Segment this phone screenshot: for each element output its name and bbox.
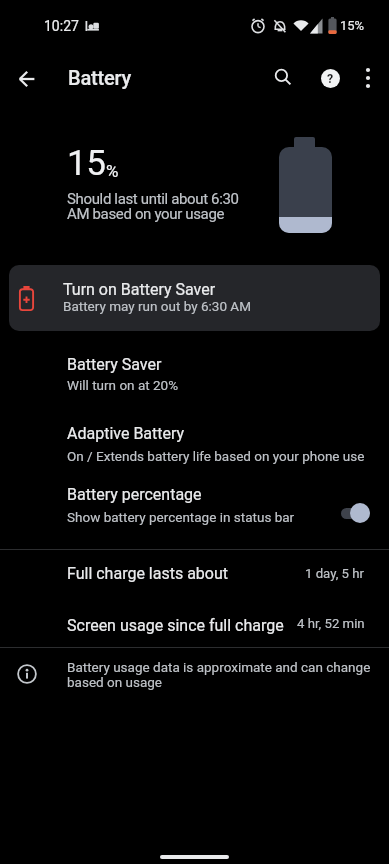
button[interactable]: Full charge lasts about [0,550,389,598]
staticText: Battery Saver [67,355,162,374]
button[interactable]: Battery Saver [0,344,389,400]
staticText: Should last until about 6:30 AM based on… [67,190,239,223]
button[interactable] [5,57,49,101]
button[interactable]: Turn on Battery Saver [9,265,380,331]
staticText: 4 hr, 52 min [297,616,365,631]
staticText: 1 day, 5 hr [305,566,365,581]
staticText: 10:27 [44,18,79,34]
button[interactable]: ? [308,56,352,100]
staticText: % [106,161,119,181]
button[interactable]: Adaptive Battery [0,412,389,468]
button[interactable]: Battery percentage [0,473,389,535]
button[interactable]: Screen usage since full charge [0,602,389,647]
staticText: Will turn on at 20% [67,377,179,393]
staticText: Screen usage since full charge [67,616,284,635]
button[interactable] [261,55,305,99]
staticText: Adaptive Battery [67,424,185,443]
staticText: Turn on Battery Saver [63,280,216,299]
staticText: 15 [67,143,106,184]
staticText: ? [327,71,334,86]
staticText: On / Extends battery life based on your … [67,448,365,464]
staticText: Battery [68,66,132,89]
staticText: Battery percentage [67,485,202,504]
staticText: 15% [340,18,365,33]
staticText: Full charge lasts about [67,564,229,583]
staticText: Show battery percentage in status bar [67,509,295,525]
staticText: Battery may run out by 6:30 AM [63,298,251,314]
staticText: Battery usage data is approximate and ca… [67,659,371,691]
button[interactable] [346,56,389,100]
